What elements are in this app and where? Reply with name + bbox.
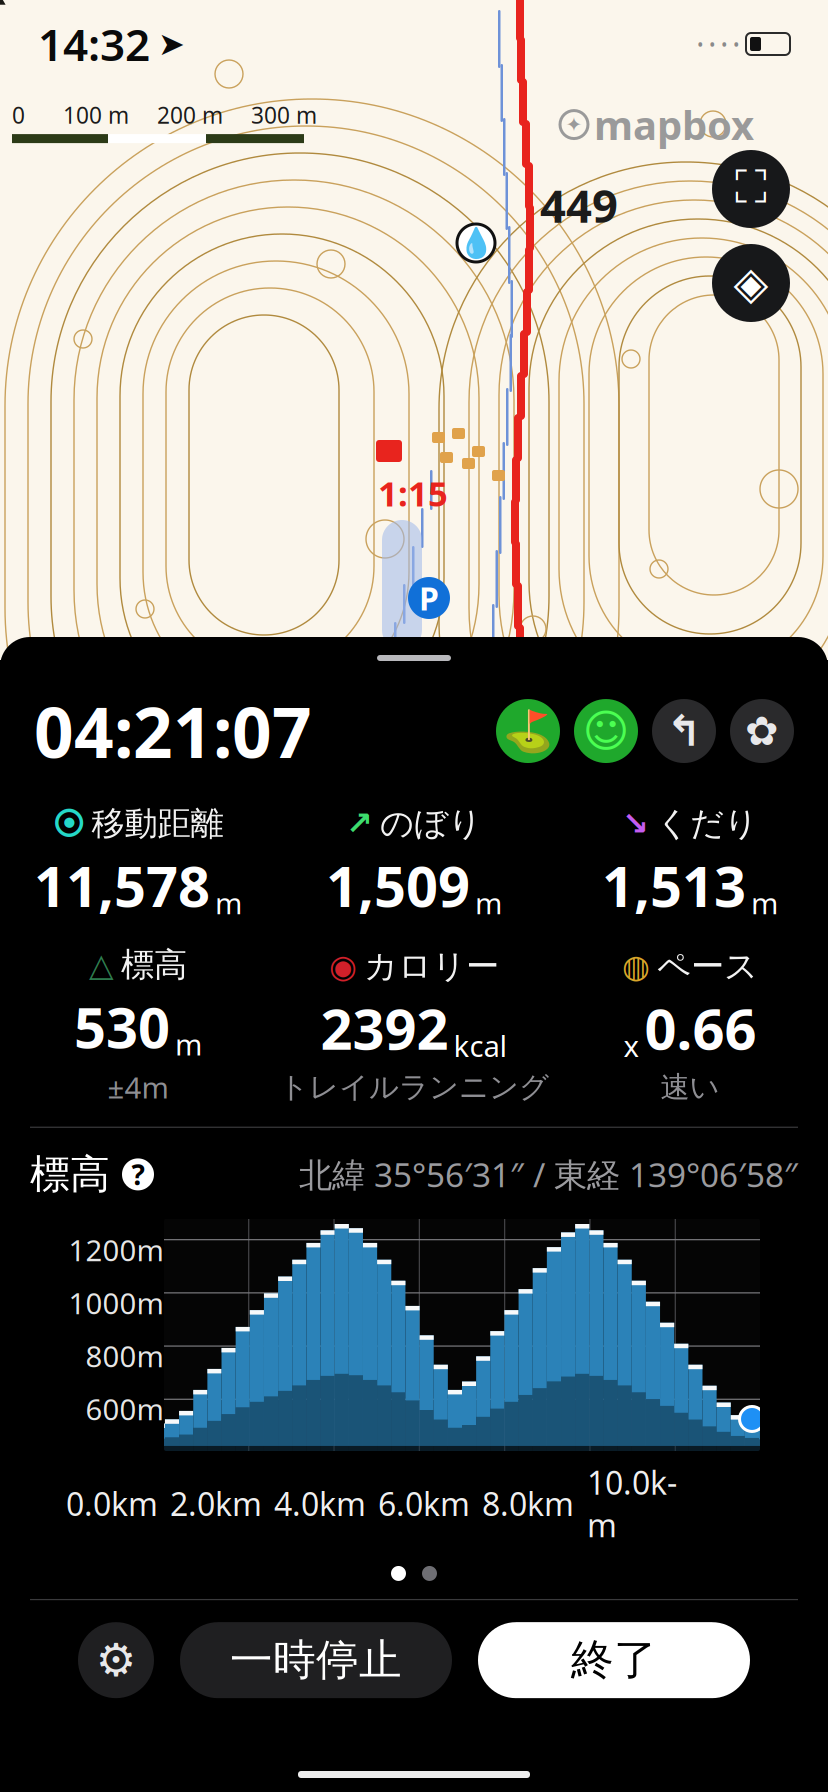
staticText: ⦿ (52, 808, 84, 839)
staticText: mapbox (594, 98, 754, 151)
staticText: 04:21:07 (34, 685, 312, 777)
button[interactable]: ルート (652, 699, 716, 763)
staticText: 1,509 (326, 848, 470, 922)
staticText: 6.0km (378, 1482, 470, 1525)
staticText: △ (89, 947, 114, 983)
staticText: 300 m (251, 100, 317, 130)
staticText: カロリー (364, 946, 499, 987)
staticText: m (175, 1025, 202, 1064)
staticText: 11,578 (34, 848, 210, 922)
staticText: 標高 (30, 1150, 110, 1199)
staticText: 449 (540, 175, 618, 235)
staticText: ⛳ (503, 708, 553, 754)
staticText: ↘ (622, 805, 649, 842)
staticText: 800m (85, 1336, 163, 1375)
staticText: のぼり (380, 803, 482, 844)
staticText: ⚙ (95, 1634, 136, 1686)
staticText: 8.0km (482, 1482, 574, 1525)
staticText: 14:32 (38, 15, 150, 73)
staticText: ±4m (107, 1068, 168, 1107)
staticText: ? (131, 1156, 144, 1193)
staticText: 💧 (457, 226, 494, 260)
staticText: 1200m (68, 1230, 163, 1269)
staticText: くだり (656, 803, 758, 844)
staticText: 0 (12, 100, 25, 130)
staticText: ⛶ (735, 167, 767, 211)
staticText: 600m (85, 1389, 163, 1428)
button[interactable]: 設定 (78, 1622, 154, 1698)
staticText: 速い (660, 1069, 719, 1105)
staticText: ◍ (622, 948, 650, 984)
button[interactable]: 一時停止 (180, 1622, 452, 1698)
staticText: ペース (657, 946, 758, 987)
staticText: 1,513 (602, 848, 746, 922)
staticText: 2392 (320, 991, 448, 1065)
staticText: • • • • (697, 32, 740, 55)
staticText: 終了 (571, 1634, 657, 1686)
button[interactable]: グループ (730, 699, 794, 763)
staticText: m (475, 883, 502, 922)
staticText: ↰ (666, 707, 702, 755)
staticText: 移動距離 (91, 803, 223, 844)
staticText: ➤ (158, 26, 185, 62)
staticText: 2.0km (170, 1482, 262, 1525)
staticText: ✦ (565, 113, 582, 136)
button[interactable]: 全画面 (712, 150, 790, 228)
staticText: ◈ (733, 257, 768, 309)
button[interactable]: レイヤー (712, 244, 790, 322)
staticText: 0.66 (644, 991, 756, 1065)
staticText: x (623, 1026, 639, 1065)
staticText: 北緯 35°56′31″ / 東経 139°06′58″ (299, 1152, 798, 1197)
staticText: P (419, 577, 439, 619)
staticText: 10.0km (587, 1461, 677, 1546)
staticText: 4.0km (274, 1482, 366, 1525)
button[interactable]: ウェイポイント (496, 699, 560, 763)
staticText: 1:15 (378, 470, 448, 516)
staticText: ◉ (329, 948, 357, 984)
staticText: 一時停止 (230, 1634, 402, 1686)
staticText: 1000m (68, 1283, 163, 1322)
staticText: m (215, 883, 242, 922)
button[interactable]: 標高について (122, 1158, 154, 1190)
staticText: トレイルランニング (279, 1069, 549, 1105)
staticText: ✿ (745, 708, 779, 754)
staticText: 200 m (157, 100, 223, 130)
button[interactable]: メッセージ (574, 699, 638, 763)
staticText: 100 m (63, 100, 129, 130)
staticText: 標高 (121, 944, 187, 985)
staticText: 0.0km (66, 1482, 158, 1525)
staticText: kcal (453, 1026, 507, 1065)
staticText: m (751, 883, 778, 922)
staticText: ↗ (346, 805, 373, 842)
staticText: ☺ (582, 705, 629, 757)
button[interactable]: 終了 (478, 1622, 750, 1698)
staticText: 530 (74, 989, 170, 1064)
